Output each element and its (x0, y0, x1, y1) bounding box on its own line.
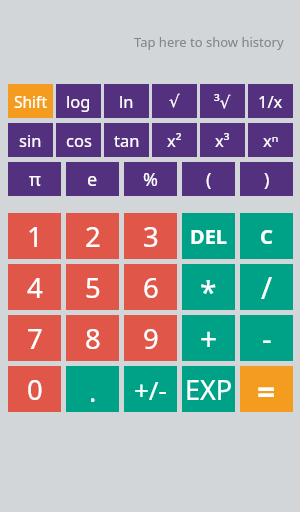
button[interactable]: 3 (124, 213, 177, 259)
staticText: + (200, 318, 218, 359)
button[interactable]: + (182, 315, 235, 361)
button[interactable]: e (66, 162, 119, 196)
button[interactable]: x³ (200, 123, 245, 157)
button[interactable]: ³√ (200, 84, 245, 118)
button[interactable]: 2 (66, 213, 119, 259)
staticText: 6 (143, 269, 159, 306)
button[interactable]: x² (152, 123, 197, 157)
staticText: EXP (185, 371, 233, 408)
button[interactable]: . (66, 366, 119, 412)
button[interactable]: √ (152, 84, 197, 118)
button[interactable]: 6 (124, 264, 177, 310)
staticText: Tap here to show history (134, 33, 284, 51)
button[interactable]: 8 (66, 315, 119, 361)
button[interactable]: +/- (124, 366, 177, 412)
staticText: ³√ (214, 90, 231, 112)
button[interactable]: 0 (8, 366, 61, 412)
button[interactable]: * (182, 264, 235, 310)
button[interactable]: = (240, 366, 293, 412)
button[interactable]: ( (182, 162, 235, 196)
button[interactable]: ln (104, 84, 149, 118)
staticText: cos (66, 129, 92, 151)
staticText: 2 (85, 218, 101, 255)
staticText: ( (206, 167, 212, 192)
staticText: 1 (27, 218, 43, 255)
staticText: e (87, 167, 98, 192)
staticText: sin (19, 129, 42, 151)
staticText: . (89, 373, 97, 410)
staticText: 4 (27, 269, 43, 306)
staticText: 9 (143, 320, 159, 357)
button[interactable]: 1 (8, 213, 61, 259)
staticText: x² (167, 129, 182, 151)
staticText: - (262, 318, 272, 359)
staticText: π (29, 167, 41, 192)
staticText: 8 (85, 320, 101, 357)
staticText: xⁿ (263, 129, 279, 151)
staticText: DEL (190, 223, 228, 250)
staticText: * (200, 271, 217, 312)
staticText: tan (114, 129, 140, 151)
button[interactable]: π (8, 162, 61, 196)
button[interactable]: 4 (8, 264, 61, 310)
button[interactable]: % (124, 162, 177, 196)
staticText: ) (264, 167, 270, 192)
button[interactable]: xⁿ (248, 123, 293, 157)
button[interactable]: sin (8, 123, 53, 157)
button[interactable]: C (240, 213, 293, 259)
button[interactable]: tan (104, 123, 149, 157)
button[interactable]: DEL (182, 213, 235, 259)
staticText: = (257, 370, 276, 414)
button[interactable]: log (56, 84, 101, 118)
staticText: √ (169, 92, 180, 111)
staticText: 0 (27, 371, 43, 408)
staticText: 7 (27, 320, 43, 357)
staticText: 5 (85, 269, 101, 306)
button[interactable]: / (240, 264, 293, 310)
staticText: C (260, 223, 273, 250)
staticText: x³ (215, 129, 230, 151)
staticText: log (66, 90, 91, 112)
button[interactable]: ) (240, 162, 293, 196)
staticText: +/- (134, 372, 167, 407)
button[interactable]: cos (56, 123, 101, 157)
staticText: ln (119, 90, 134, 112)
button[interactable]: 7 (8, 315, 61, 361)
button[interactable]: Shift (8, 84, 53, 118)
button[interactable]: 5 (66, 264, 119, 310)
staticText: Shift (14, 91, 48, 112)
staticText: / (261, 267, 273, 308)
button[interactable]: 1/x (248, 84, 293, 118)
button[interactable]: - (240, 315, 293, 361)
staticText: 3 (143, 218, 159, 255)
button[interactable]: EXP (182, 366, 235, 412)
staticText: % (143, 167, 158, 192)
button[interactable]: 9 (124, 315, 177, 361)
staticText: 1/x (258, 90, 283, 112)
